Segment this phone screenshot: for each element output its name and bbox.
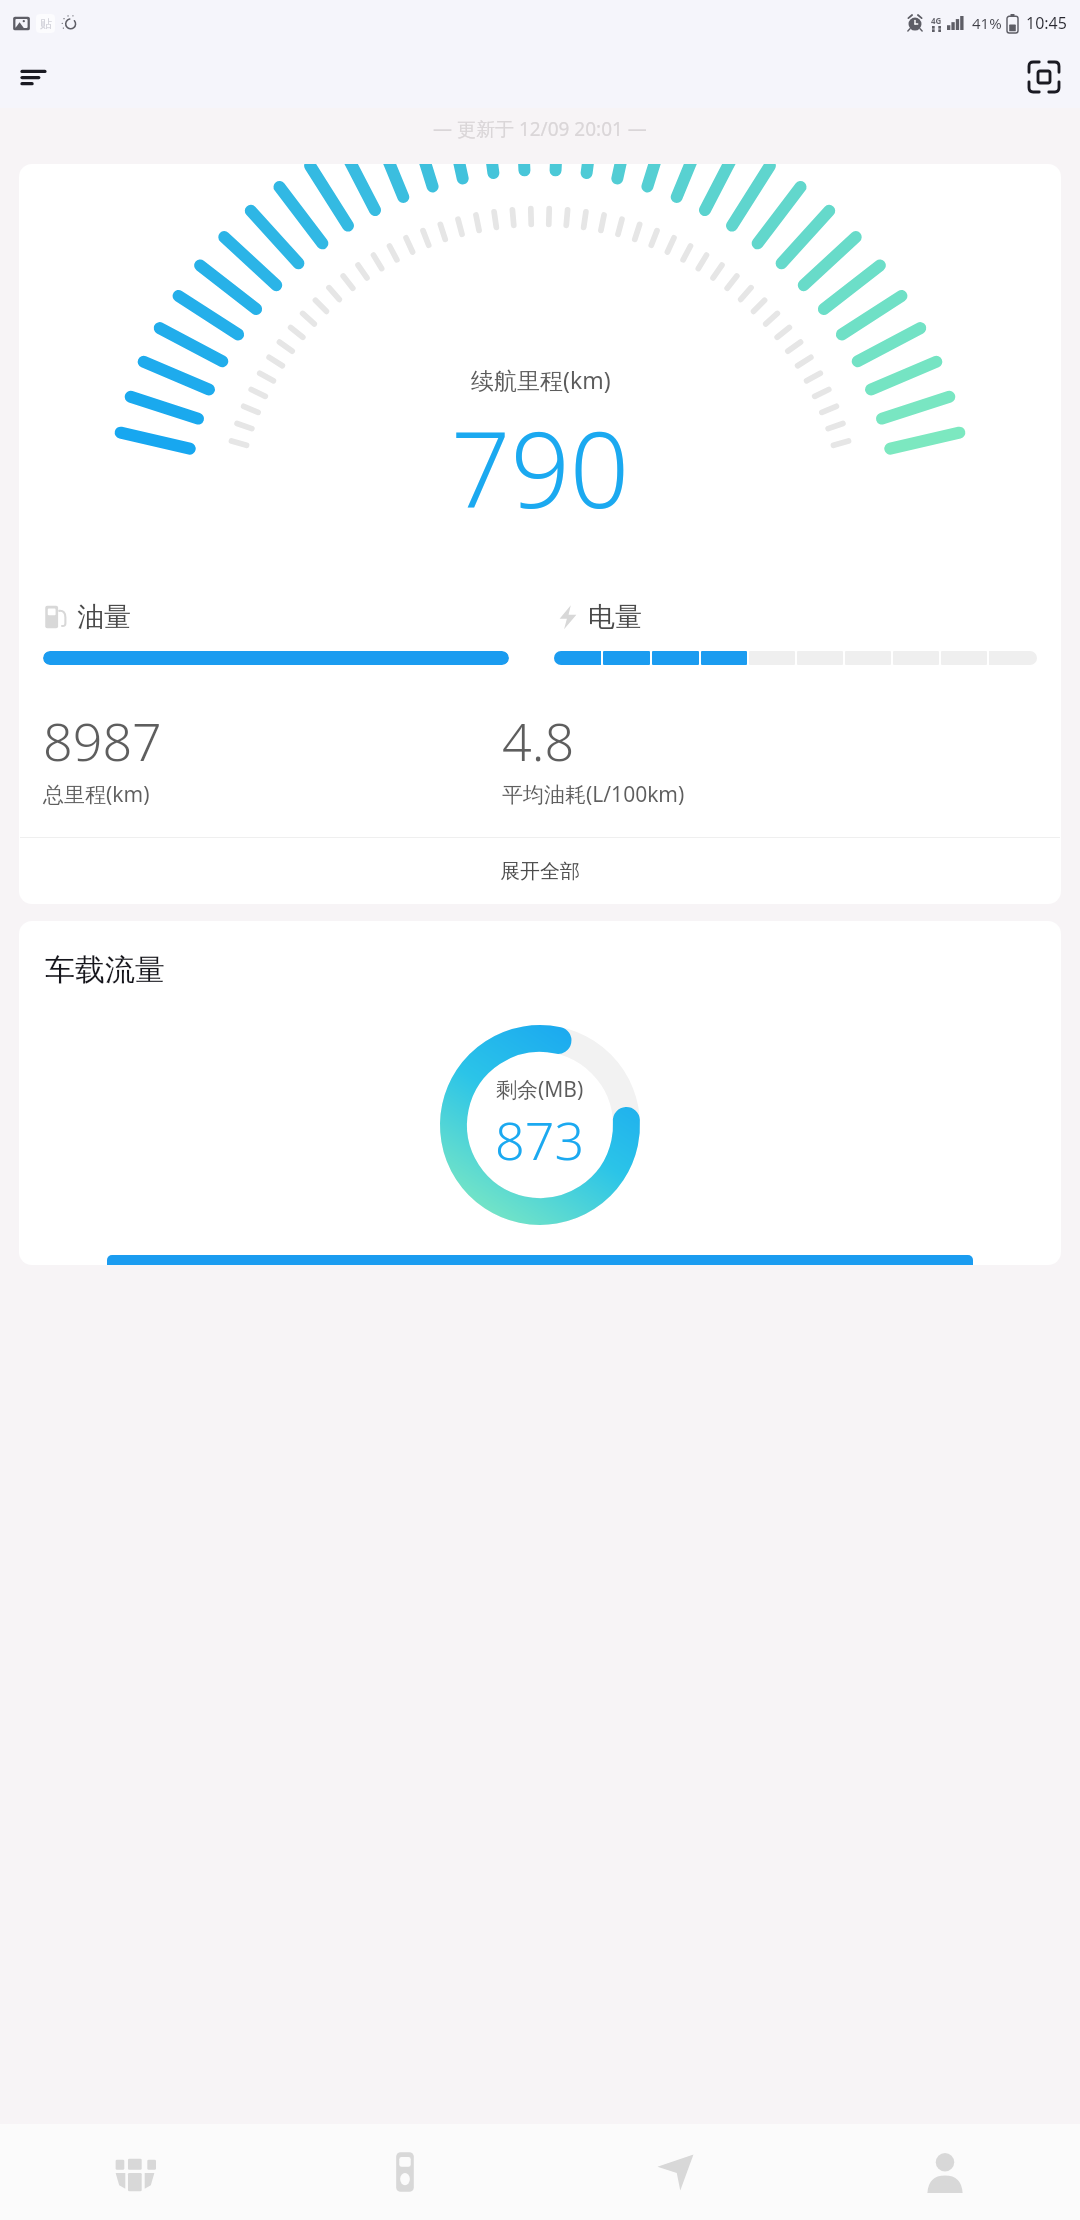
button[interactable] — [107, 1255, 973, 1265]
staticText: 4G — [931, 15, 942, 26]
staticText: 油量 — [77, 600, 131, 634]
staticText: 电量 — [588, 600, 642, 634]
staticText: 8987 — [43, 705, 162, 776]
staticText: 4.8 — [502, 705, 575, 776]
staticText: 41% — [972, 13, 1002, 33]
staticText: 790 — [451, 397, 630, 539]
staticText: 续航里程(km) — [471, 364, 611, 395]
staticText: 剩余(MB) — [496, 1075, 584, 1104]
button[interactable]: Scan — [1018, 51, 1070, 103]
button[interactable]: Navigation — [540, 2124, 810, 2220]
button[interactable]: Profile — [810, 2124, 1080, 2220]
staticText: 车载流量 — [45, 951, 165, 989]
staticText: — 更新于 12/09 20:01 — — [433, 116, 647, 142]
staticText: 10:45 — [1026, 12, 1067, 34]
button[interactable]: 展开全部 — [19, 838, 1061, 904]
button[interactable]: Remote — [270, 2124, 540, 2220]
staticText: 873 — [495, 1104, 585, 1175]
staticText: 展开全部 — [500, 859, 580, 884]
staticText: 总里程(km) — [43, 780, 150, 809]
button[interactable]: Car — [0, 2124, 270, 2220]
button[interactable]: Menu — [10, 51, 62, 103]
staticText: 平均油耗(L/100km) — [502, 780, 685, 809]
staticText: 贴 — [40, 16, 52, 31]
